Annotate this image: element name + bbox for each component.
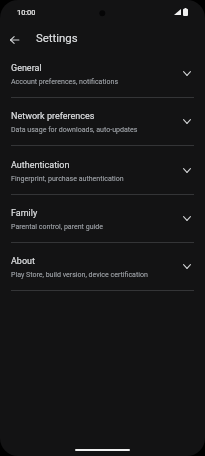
staticText: Fingerprint, purchase authentication: [11, 174, 124, 182]
staticText: Network preferences: [11, 111, 95, 122]
button[interactable]: About: [0, 242, 205, 290]
button[interactable]: Network preferences: [0, 97, 205, 145]
button[interactable]: Expand Network preferences: [175, 109, 199, 133]
staticText: Settings: [36, 31, 78, 44]
button[interactable]: Expand About: [175, 254, 199, 278]
staticText: Data usage for downloads, auto-updates: [11, 125, 138, 133]
button[interactable]: Expand Family: [175, 206, 199, 230]
staticText: About: [11, 256, 35, 267]
button[interactable]: Authentication: [0, 146, 205, 194]
staticText: General: [11, 63, 42, 74]
button[interactable]: Expand General: [175, 61, 199, 85]
button[interactable]: Expand Authentication: [175, 158, 199, 182]
button[interactable]: General: [0, 49, 205, 97]
staticText: Authentication: [11, 160, 70, 171]
staticText: Play Store, build version, device certif…: [11, 270, 148, 278]
button[interactable]: Family: [0, 194, 205, 242]
staticText: Account preferences, notifications: [11, 77, 119, 85]
staticText: Parental control, parent guide: [11, 222, 103, 230]
staticText: Family: [11, 208, 38, 219]
button[interactable]: Back: [2, 27, 27, 52]
staticText: 10:00: [17, 8, 36, 17]
